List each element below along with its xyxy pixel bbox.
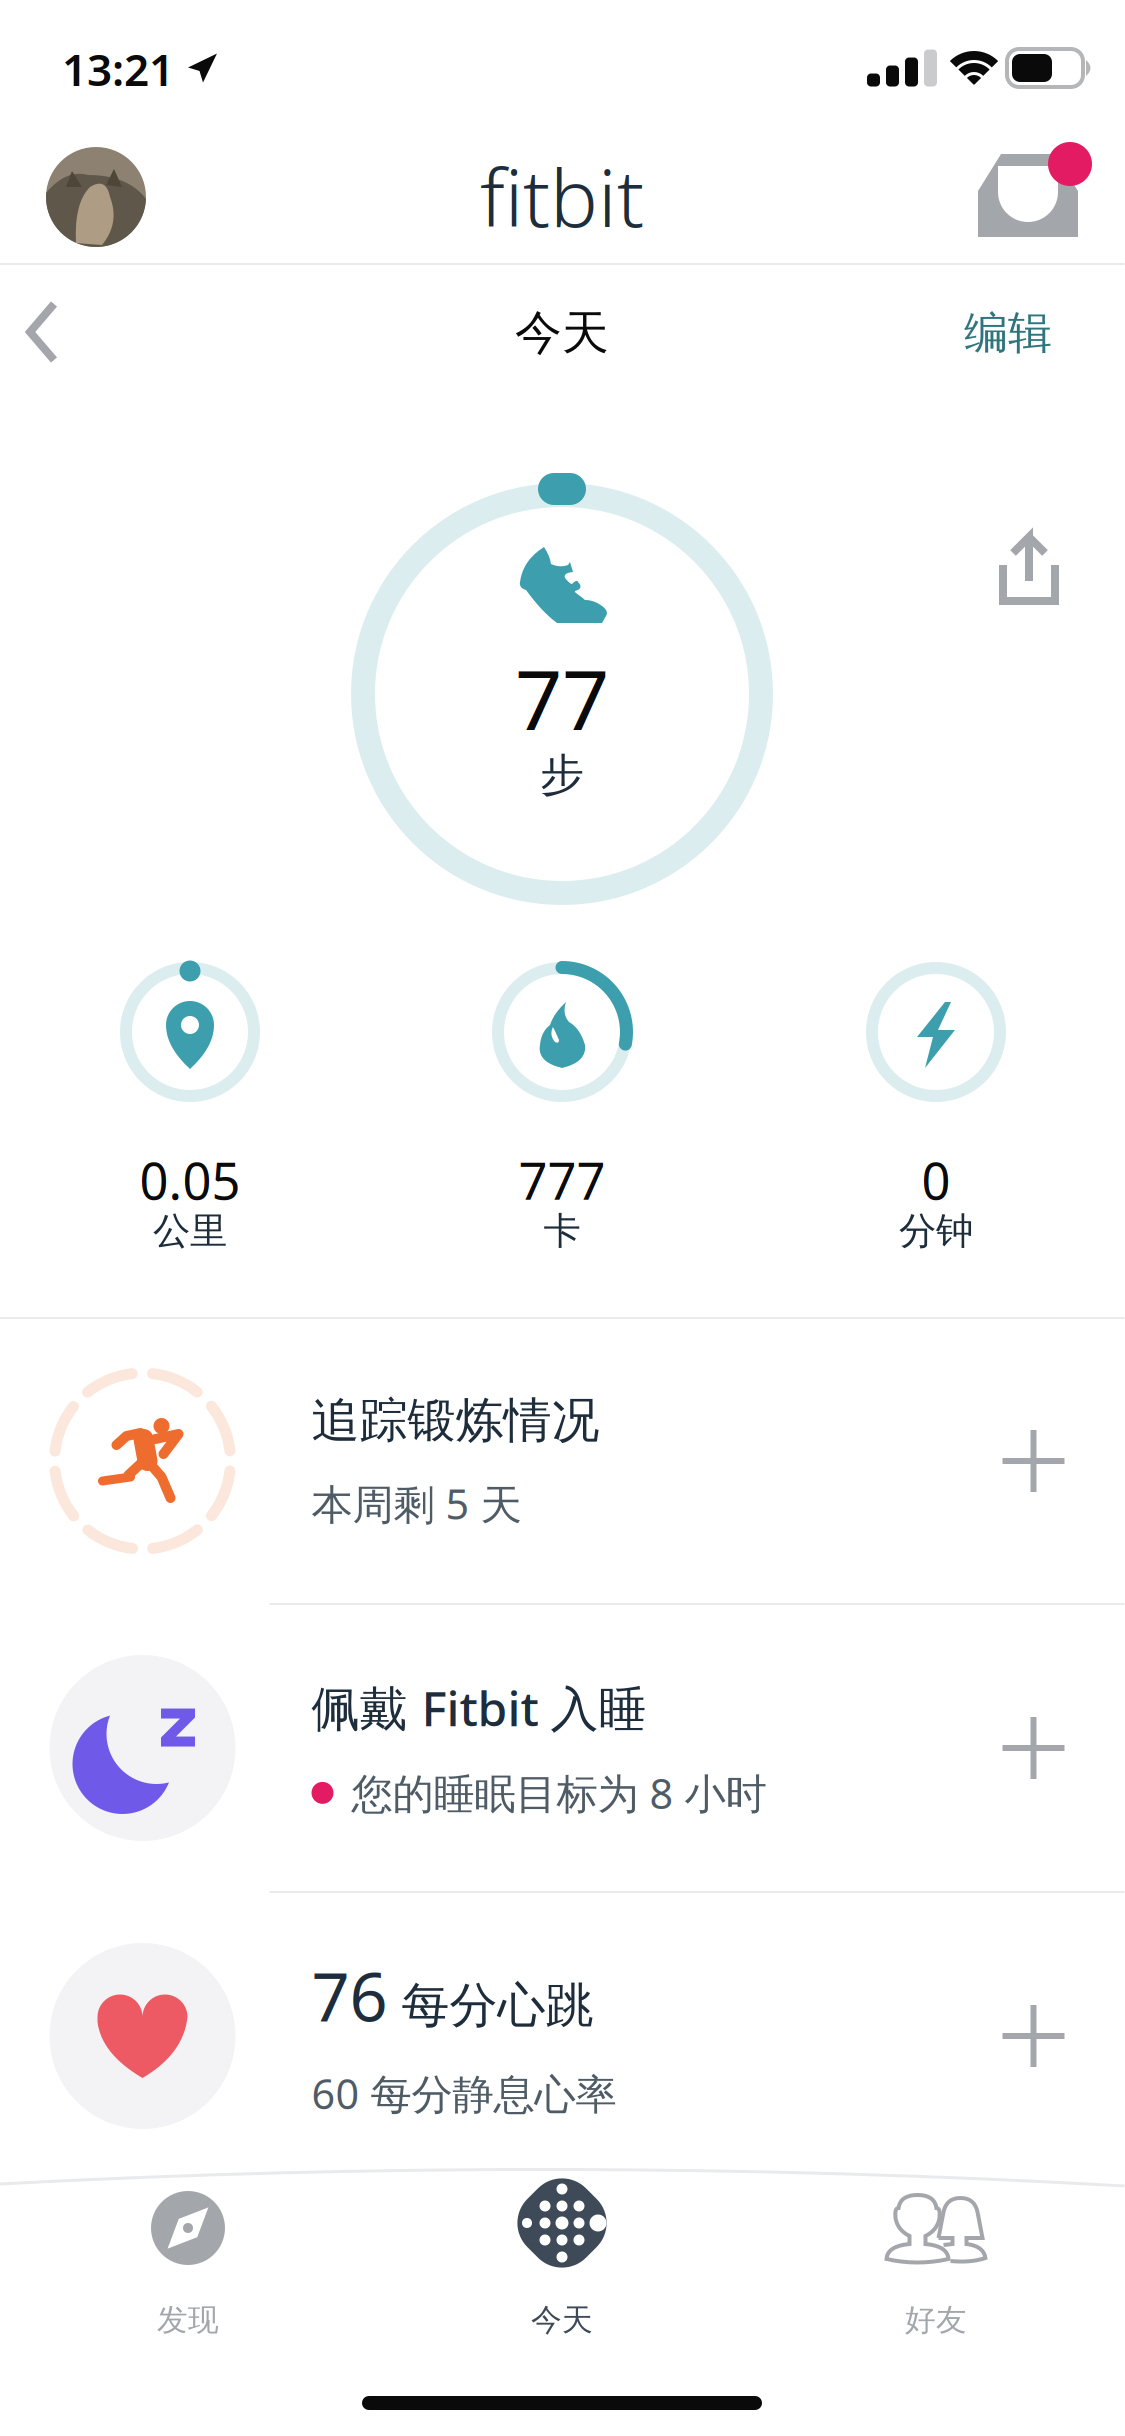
button[interactable]: 0.05 — [40, 950, 340, 1250]
staticText: 每分心跳 — [401, 1976, 593, 2035]
button[interactable]: Discover — [88, 2178, 288, 2278]
staticText: 编辑 — [964, 306, 1052, 360]
button[interactable]: Share — [974, 515, 1084, 625]
button[interactable]: Profile — [31, 132, 161, 262]
button[interactable]: 777 — [412, 950, 712, 1250]
button[interactable]: Back — [12, 274, 132, 394]
button[interactable]: 好友 — [816, 2290, 1056, 2350]
button[interactable]: 76 — [0, 1892, 1124, 2180]
staticText: 60 每分静息心率 — [311, 2066, 616, 2121]
button[interactable]: 追踪锻炼情况 — [0, 1318, 1124, 1604]
button[interactable]: 今天 — [442, 2290, 682, 2350]
staticText: 本周剩 5 天 — [311, 1476, 521, 1531]
staticText: fitbit — [480, 143, 644, 249]
staticText: 发现 — [157, 2301, 219, 2339]
staticText: 777 — [518, 1146, 605, 1214]
staticText: 公里 — [153, 1208, 227, 1254]
staticText: 追踪锻炼情况 — [311, 1391, 599, 1450]
staticText: 卡 — [543, 1208, 580, 1254]
staticText: 佩戴 Fitbit 入睡 — [311, 1676, 646, 1739]
button[interactable]: 0 — [786, 950, 1086, 1250]
staticText: 好友 — [905, 2301, 967, 2339]
staticText: 分钟 — [899, 1208, 973, 1254]
button[interactable]: Friends — [836, 2178, 1036, 2278]
button[interactable]: Notifications — [963, 136, 1093, 256]
staticText: 77 — [515, 643, 609, 753]
staticText: 今天 — [515, 304, 609, 362]
staticText: 您的睡眠目标为 8 小时 — [351, 1765, 766, 1820]
staticText: 今天 — [531, 2301, 593, 2339]
button[interactable]: 编辑 — [908, 288, 1108, 378]
staticText: 0.05 — [139, 1146, 240, 1214]
staticText: 0 — [921, 1146, 950, 1214]
button[interactable]: 佩戴 Fitbit 入睡 — [0, 1604, 1124, 1892]
button[interactable]: Today — [462, 2167, 662, 2279]
staticText: 13:21 — [62, 40, 174, 98]
staticText: 76 — [311, 1951, 387, 2040]
button[interactable]: 发现 — [68, 2290, 308, 2350]
staticText: 步 — [540, 748, 584, 802]
